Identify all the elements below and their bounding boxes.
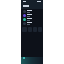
button[interactable]: [23, 13, 41, 17]
button[interactable]: [23, 17, 41, 21]
button[interactable]: [23, 21, 41, 25]
button[interactable]: [23, 9, 41, 13]
